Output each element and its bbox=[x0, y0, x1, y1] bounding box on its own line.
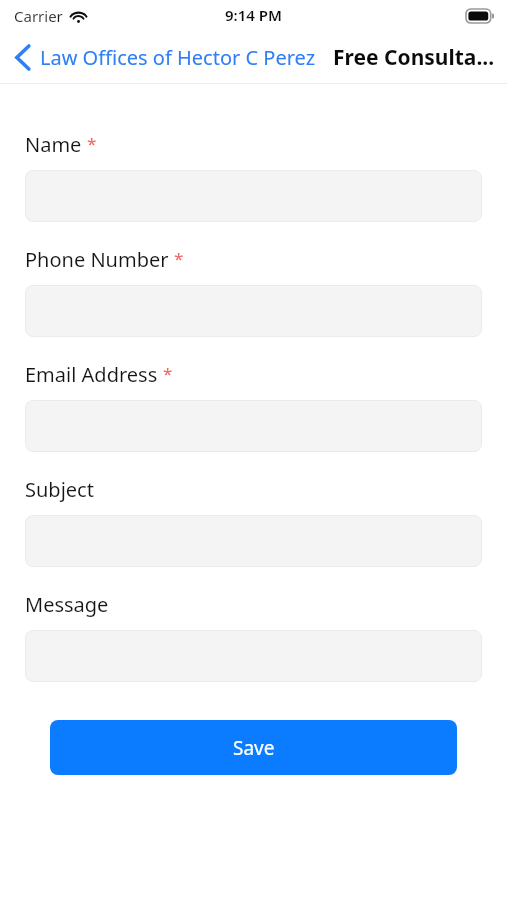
staticText: Phone Number bbox=[25, 246, 169, 273]
other: Back bbox=[16, 46, 30, 69]
button[interactable]: Back bbox=[0, 38, 324, 77]
staticText: Subject bbox=[25, 476, 94, 503]
staticText: Carrier bbox=[14, 6, 63, 26]
staticText: * bbox=[163, 362, 173, 385]
staticText: * bbox=[174, 247, 184, 270]
staticText: Save bbox=[233, 735, 275, 761]
staticText: Name bbox=[25, 131, 82, 158]
staticText: Free Consulta... bbox=[333, 43, 495, 72]
staticText: Law Offices of Hector C Perez bbox=[40, 44, 316, 71]
staticText: * bbox=[87, 132, 97, 155]
staticText: Email Address bbox=[25, 361, 158, 388]
button[interactable]: Save bbox=[50, 720, 457, 775]
staticText: Message bbox=[25, 591, 109, 618]
staticText: 9:14 PM bbox=[225, 5, 282, 25]
